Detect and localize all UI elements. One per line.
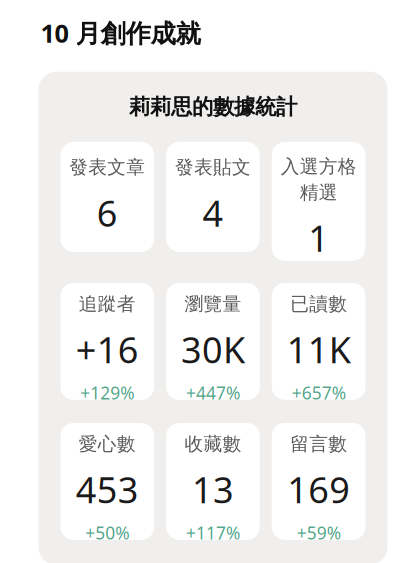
staticText: +59%: [297, 521, 341, 544]
button[interactable]: 愛心數: [60, 423, 154, 540]
staticText: 13: [192, 465, 234, 513]
button[interactable]: 發表貼文: [166, 142, 260, 252]
staticText: +16: [76, 325, 139, 373]
staticText: 入選方格: [281, 155, 357, 178]
staticText: 發表文章: [69, 156, 145, 179]
staticText: 11K: [287, 325, 351, 373]
staticText: 6: [97, 189, 118, 237]
button[interactable]: 已讀數: [272, 283, 365, 400]
staticText: 169: [287, 465, 350, 513]
staticText: +657%: [292, 381, 346, 404]
staticText: 收藏數: [184, 432, 241, 455]
staticText: 1: [308, 214, 329, 262]
staticText: 發表貼文: [175, 156, 251, 179]
button[interactable]: 留言數: [272, 423, 365, 540]
button[interactable]: 入選方格: [272, 142, 365, 261]
staticText: +117%: [186, 521, 240, 544]
staticText: +447%: [186, 381, 240, 404]
staticText: 4: [202, 189, 223, 237]
button[interactable]: 瀏覽量: [166, 283, 260, 400]
button[interactable]: 收藏數: [166, 423, 260, 540]
button[interactable]: 發表文章: [60, 142, 154, 252]
staticText: 453: [76, 465, 139, 513]
staticText: 精選: [300, 181, 338, 204]
staticText: 愛心數: [79, 432, 136, 455]
staticText: 瀏覽量: [184, 292, 241, 315]
staticText: 莉莉思的數據統計: [129, 94, 297, 120]
staticText: +129%: [80, 381, 134, 404]
staticText: 追蹤者: [79, 292, 136, 315]
staticText: +50%: [85, 521, 129, 544]
staticText: 已讀數: [290, 292, 347, 315]
staticText: 留言數: [290, 432, 347, 455]
staticText: 10 月創作成就: [40, 16, 200, 50]
button[interactable]: 追蹤者: [60, 283, 154, 400]
staticText: 30K: [181, 325, 245, 373]
